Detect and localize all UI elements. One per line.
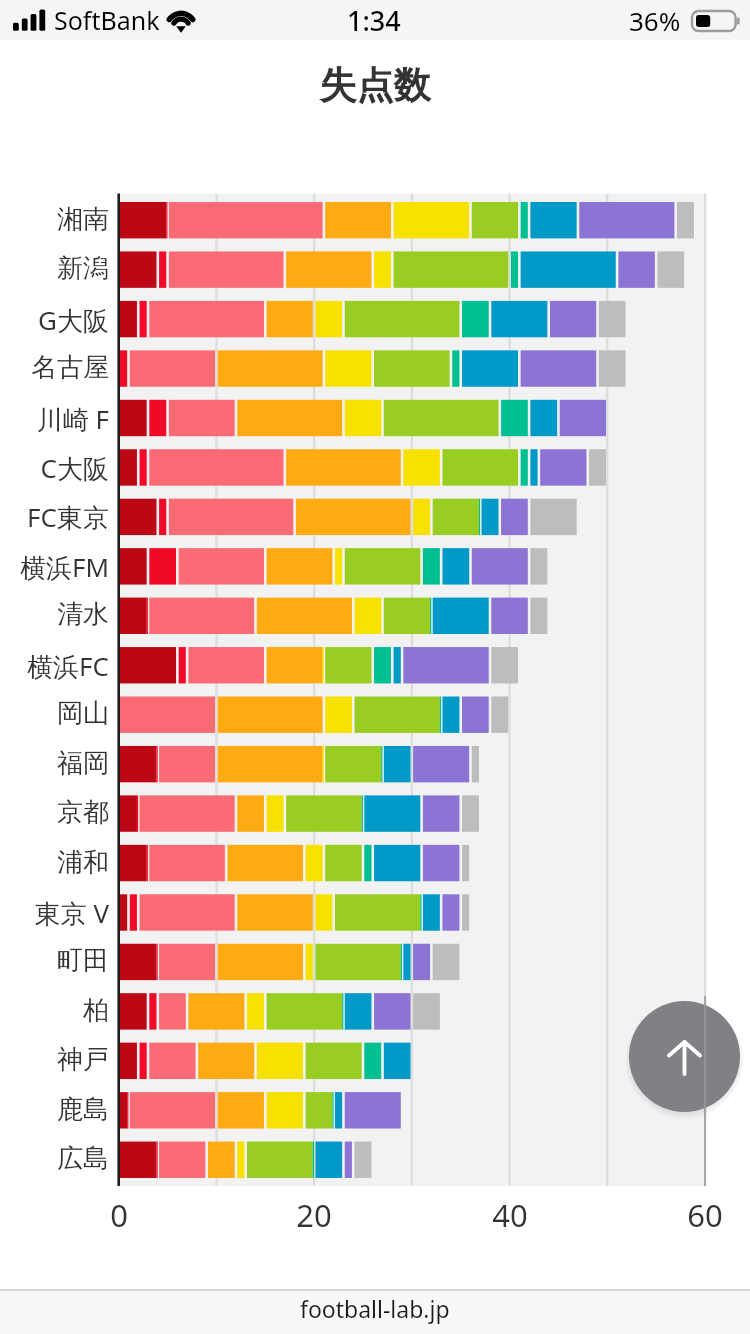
staticText: 京都 [0, 796, 109, 829]
staticText: 浦和 [0, 846, 109, 879]
button[interactable]: Scroll to top [629, 1001, 740, 1112]
staticText: 横浜FM [0, 549, 109, 585]
staticText: 0 [79, 1194, 159, 1236]
staticText: 岡山 [0, 697, 109, 730]
staticText: 柏 [0, 994, 109, 1027]
staticText: SoftBank [54, 3, 160, 37]
staticText: 町田 [0, 944, 109, 977]
staticText: 20 [274, 1194, 354, 1236]
staticText: 清水 [0, 598, 109, 631]
staticText: 湘南 [0, 203, 109, 236]
staticText: 広島 [0, 1142, 109, 1175]
staticText: 名古屋 [0, 351, 109, 384]
button[interactable]: football-lab.jp [0, 1291, 750, 1334]
staticText: G大阪 [0, 302, 109, 338]
staticText: 新潟 [0, 252, 109, 285]
staticText: 失点数 [0, 62, 750, 109]
staticText: football-lab.jp [300, 1293, 450, 1324]
staticText: 福岡 [0, 747, 109, 780]
staticText: 東京 V [0, 895, 109, 931]
staticText: 神戸 [0, 1043, 109, 1076]
staticText: 40 [470, 1194, 550, 1236]
staticText: C大阪 [0, 450, 109, 486]
staticText: 川崎 F [0, 401, 109, 437]
staticText: FC東京 [0, 499, 109, 535]
staticText: 36% [629, 3, 681, 38]
staticText: 横浜FC [0, 648, 109, 684]
staticText: 60 [665, 1194, 745, 1236]
staticText: 1:34 [347, 2, 401, 39]
staticText: 鹿島 [0, 1093, 109, 1126]
